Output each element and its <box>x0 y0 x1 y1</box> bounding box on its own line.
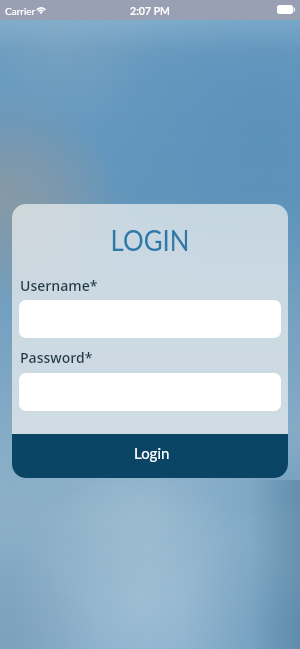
staticText: Login <box>134 444 170 462</box>
staticText: 2:07 PM <box>0 5 300 18</box>
staticText: Carrier <box>5 5 36 17</box>
staticText: LOGIN <box>16 222 283 257</box>
staticText: Password* <box>20 348 93 367</box>
staticText: Username* <box>20 276 98 295</box>
